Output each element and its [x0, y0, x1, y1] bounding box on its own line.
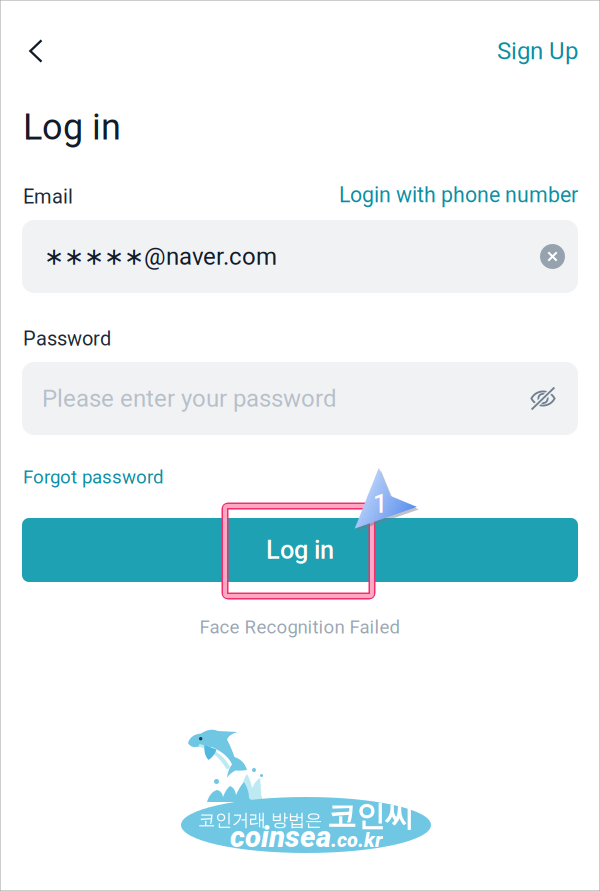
staticText: .co.kr	[331, 828, 382, 852]
button[interactable]: Login with phone number	[333, 183, 578, 207]
staticText: Please enter your password	[42, 384, 337, 412]
staticText: Face Recognition Failed	[199, 616, 400, 638]
staticText: Sign Up	[497, 37, 578, 65]
staticText: 1	[373, 489, 387, 519]
button[interactable]: Clear email	[540, 244, 565, 269]
staticText: 코인거래 방법은	[198, 809, 322, 831]
button[interactable]: Show password	[530, 385, 556, 411]
staticText: Log in	[266, 535, 334, 565]
staticText: coinsea	[230, 820, 331, 854]
staticText: Log in	[23, 106, 121, 148]
staticText: ∗∗∗∗∗@naver.com	[44, 242, 277, 270]
button[interactable]: Sign Up	[474, 29, 578, 73]
staticText: 코인씨	[327, 797, 414, 834]
button[interactable]: Log in	[22, 518, 578, 582]
staticText: Password	[23, 327, 111, 350]
staticText: Email	[23, 185, 73, 208]
staticText: Login with phone number	[339, 182, 578, 207]
button[interactable]: Back	[14, 29, 58, 73]
staticText: Forgot password	[23, 466, 164, 488]
button[interactable]: Forgot password	[23, 465, 203, 489]
